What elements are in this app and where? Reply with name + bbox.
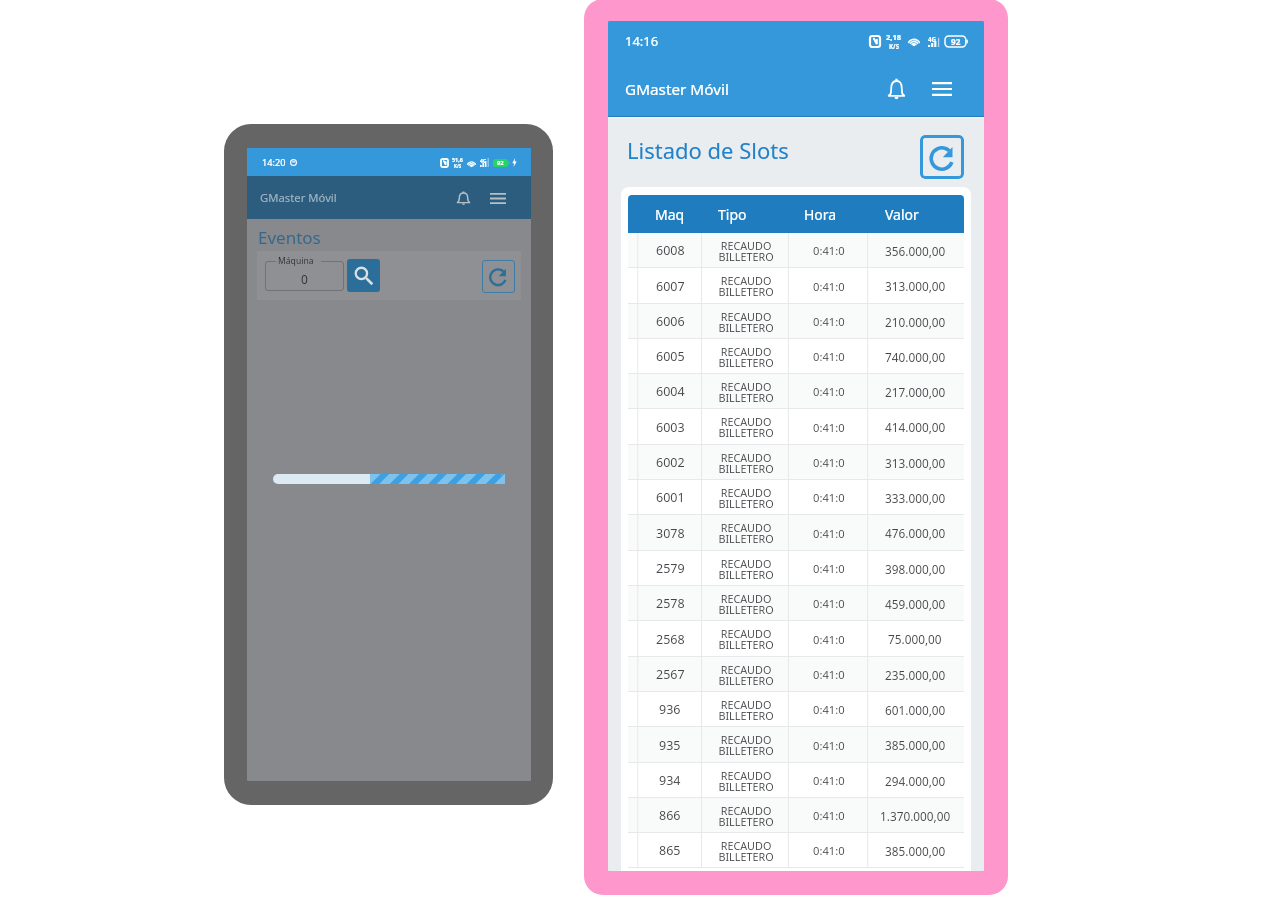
- staticText: 4G: [928, 35, 937, 43]
- button[interactable]: 866: [628, 798, 964, 833]
- staticText: K/S: [889, 42, 900, 50]
- staticText: 0:41:0: [813, 702, 845, 717]
- staticText: 0:41:0: [813, 243, 845, 258]
- button[interactable]: 934: [628, 763, 964, 798]
- staticText: 0:41:0: [813, 455, 845, 470]
- button[interactable]: 6006: [628, 304, 964, 339]
- staticText: 459.000,00: [885, 596, 946, 612]
- staticText: 2578: [656, 595, 685, 612]
- staticText: RECAUDO BILLETERO: [718, 697, 774, 723]
- button[interactable]: 865: [628, 833, 964, 868]
- staticText: GMaster Móvil: [625, 79, 729, 100]
- staticText: 6007: [656, 278, 685, 295]
- button[interactable]: Refresh: [920, 135, 964, 179]
- staticText: RECAUDO BILLETERO: [718, 838, 774, 864]
- staticText: RECAUDO BILLETERO: [718, 485, 774, 511]
- staticText: RECAUDO BILLETERO: [718, 803, 774, 829]
- staticText: 934: [659, 772, 681, 789]
- staticText: 75.000,00: [888, 631, 942, 647]
- staticText: 2,18: [886, 32, 902, 42]
- staticText: 333.000,00: [885, 490, 946, 506]
- staticText: 414.000,00: [885, 419, 946, 435]
- staticText: 865: [659, 842, 681, 859]
- staticText: Listado de Slots: [627, 135, 789, 165]
- button[interactable]: 6003: [628, 409, 964, 445]
- staticText: 92: [951, 36, 961, 47]
- button[interactable]: 2567: [628, 657, 964, 692]
- staticText: 14:16: [625, 32, 659, 50]
- staticText: 0:41:0: [813, 384, 845, 399]
- staticText: 6001: [656, 489, 685, 506]
- staticText: 0:41:0: [813, 526, 845, 541]
- staticText: 601.000,00: [885, 702, 946, 718]
- button[interactable]: 3078: [628, 515, 964, 551]
- staticText: 3078: [656, 525, 685, 542]
- button[interactable]: 6004: [628, 374, 964, 409]
- staticText: Hora: [804, 205, 837, 224]
- staticText: 0:41:0: [813, 279, 845, 294]
- staticText: RECAUDO BILLETERO: [718, 768, 774, 794]
- staticText: RECAUDO BILLETERO: [718, 732, 774, 758]
- button[interactable]: Menu: [483, 183, 513, 213]
- staticText: 356.000,00: [885, 243, 946, 259]
- staticText: Valor: [885, 205, 919, 224]
- button[interactable]: 936: [628, 692, 964, 727]
- staticText: 0:41:0: [813, 349, 845, 364]
- staticText: 6008: [656, 242, 685, 259]
- staticText: RECAUDO BILLETERO: [718, 662, 774, 688]
- staticText: Maq: [655, 205, 685, 224]
- staticText: 385.000,00: [885, 843, 946, 859]
- button[interactable]: 2568: [628, 621, 964, 657]
- button[interactable]: Refresh: [482, 260, 515, 293]
- staticText: 1.370.000,00: [880, 808, 951, 824]
- button[interactable]: 2579: [628, 551, 964, 586]
- button[interactable]: 6001: [628, 480, 964, 515]
- staticText: 0:41:0: [813, 420, 845, 435]
- staticText: 294.000,00: [885, 773, 946, 789]
- staticText: 0:41:0: [813, 808, 845, 823]
- staticText: 0:41:0: [813, 738, 845, 753]
- staticText: 398.000,00: [885, 561, 946, 577]
- staticText: RECAUDO BILLETERO: [718, 238, 774, 264]
- staticText: 0:41:0: [813, 596, 845, 611]
- staticText: 476.000,00: [885, 525, 946, 541]
- button[interactable]: Search: [347, 259, 380, 292]
- staticText: 51,6: [452, 156, 463, 163]
- button[interactable]: Notifications: [876, 69, 916, 109]
- staticText: 2579: [656, 560, 685, 577]
- button[interactable]: 6007: [628, 268, 964, 304]
- staticText: 0:41:0: [813, 667, 845, 682]
- staticText: 0:41:0: [813, 773, 845, 788]
- staticText: 235.000,00: [885, 667, 946, 683]
- staticText: 6006: [656, 313, 685, 330]
- button[interactable]: 2578: [628, 586, 964, 621]
- staticText: 2568: [656, 631, 685, 648]
- staticText: 210.000,00: [885, 314, 946, 330]
- button[interactable]: Notifications: [449, 184, 477, 212]
- button[interactable]: Máquina: [265, 261, 344, 291]
- staticText: RECAUDO BILLETERO: [718, 520, 774, 546]
- staticText: 936: [659, 701, 681, 718]
- staticText: 313.000,00: [885, 455, 946, 471]
- button[interactable]: Menu: [921, 68, 963, 110]
- staticText: 0:41:0: [813, 314, 845, 329]
- staticText: 0: [301, 271, 308, 287]
- staticText: 0:41:0: [813, 843, 845, 858]
- staticText: 4G: [480, 158, 487, 165]
- staticText: Tipo: [718, 205, 747, 224]
- staticText: 0:41:0: [813, 632, 845, 647]
- staticText: 935: [659, 737, 681, 754]
- staticText: RECAUDO BILLETERO: [718, 309, 774, 335]
- staticText: 14:20: [262, 156, 286, 169]
- button[interactable]: 6005: [628, 339, 964, 374]
- button[interactable]: 6008: [628, 233, 964, 268]
- button[interactable]: 6002: [628, 445, 964, 480]
- staticText: 866: [659, 807, 681, 824]
- button[interactable]: 935: [628, 727, 964, 763]
- staticText: 6004: [656, 383, 685, 400]
- staticText: RECAUDO BILLETERO: [718, 591, 774, 617]
- staticText: RECAUDO BILLETERO: [718, 556, 774, 582]
- staticText: 6003: [656, 419, 685, 436]
- staticText: GMaster Móvil: [260, 190, 337, 205]
- staticText: RECAUDO BILLETERO: [718, 273, 774, 299]
